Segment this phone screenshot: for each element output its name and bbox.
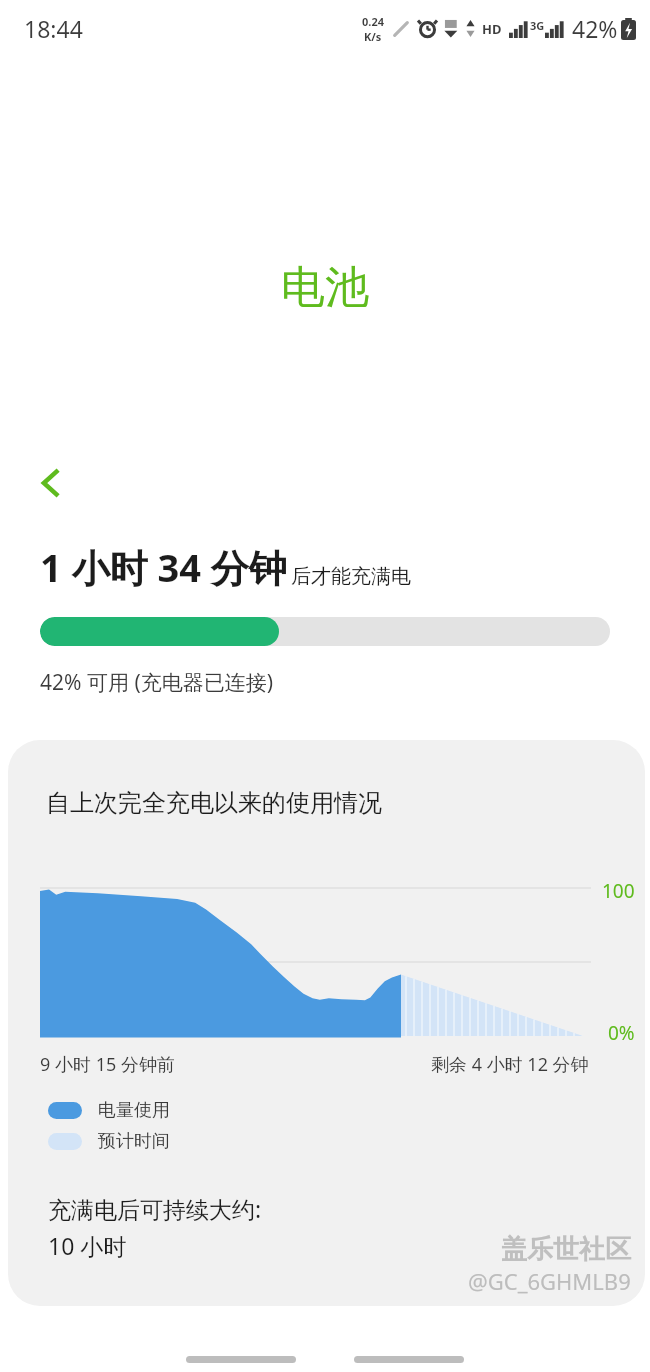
staticText: 10 小时	[48, 1230, 127, 1261]
staticText: 预计时间	[98, 1130, 170, 1153]
button[interactable]: Recents	[186, 1356, 296, 1363]
staticText: 盖乐世社区	[501, 1233, 631, 1266]
staticText: HD	[482, 20, 502, 38]
staticText: @GC_6GHMLB9	[468, 1266, 631, 1296]
staticText: 自上次完全充电以来的使用情况	[46, 788, 382, 818]
staticText: 1 小时 34 分钟	[40, 541, 287, 593]
staticText: 0.24	[362, 14, 384, 29]
staticText: 后才能充满电	[291, 564, 411, 589]
staticText: 充满电后可持续大约:	[48, 1193, 262, 1224]
staticText: K/s	[364, 29, 382, 44]
button[interactable]: Back	[354, 1356, 464, 1363]
staticText: 剩余 4 小时 12 分钟	[431, 1052, 589, 1077]
staticText: 42%	[572, 13, 618, 44]
staticText: 42% 可用 (充电器已连接)	[40, 668, 273, 697]
staticText: 9 小时 15 分钟前	[40, 1052, 175, 1077]
button[interactable]: 自上次完全充电以来的使用情况	[8, 740, 645, 1306]
staticText: 100	[602, 878, 635, 904]
staticText: 0%	[608, 1020, 635, 1046]
staticText: 3G	[530, 18, 545, 33]
staticText: 电池	[281, 260, 369, 315]
button[interactable]: Back	[24, 455, 80, 511]
staticText: 电量使用	[98, 1099, 170, 1122]
staticText: 18:44	[24, 13, 83, 44]
